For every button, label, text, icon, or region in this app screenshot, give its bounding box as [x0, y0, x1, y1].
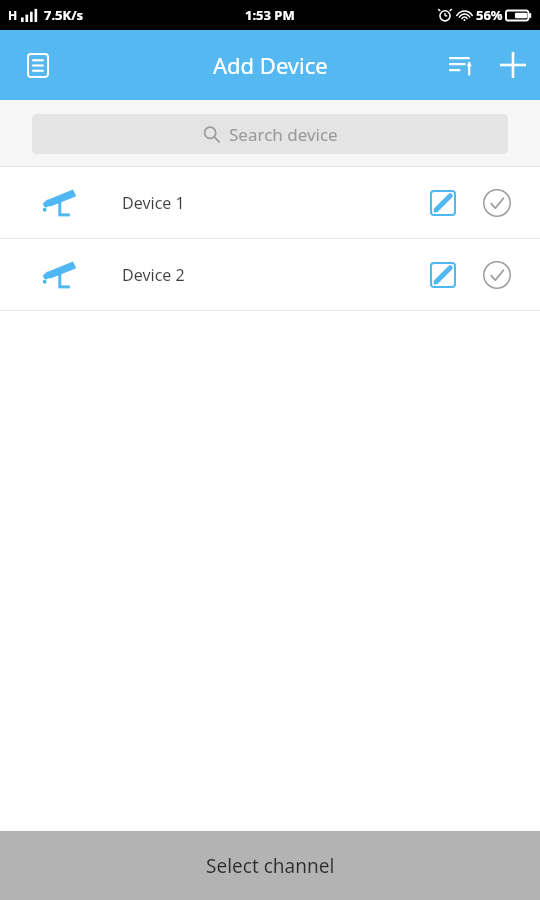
- button[interactable]: Select Device 2: [470, 248, 524, 302]
- staticText: Device 2: [122, 264, 416, 286]
- button[interactable]: Device 1: [0, 167, 540, 238]
- button[interactable]: Edit Device 1: [416, 176, 470, 230]
- button[interactable]: Device 2: [0, 239, 540, 310]
- staticText: 7.5K/s: [44, 6, 84, 24]
- button[interactable]: Menu: [16, 43, 60, 87]
- staticText: Search device: [229, 123, 338, 146]
- button[interactable]: Sort: [438, 41, 486, 89]
- staticText: 56%: [476, 6, 503, 24]
- staticText: 1:53 PM: [245, 6, 295, 24]
- staticText: Device 1: [122, 192, 416, 214]
- button[interactable]: Select Device 1: [470, 176, 524, 230]
- button[interactable]: Edit Device 2: [416, 248, 470, 302]
- button[interactable]: Add: [486, 38, 540, 92]
- button[interactable]: Search device: [32, 114, 508, 154]
- button[interactable]: Select channel: [0, 831, 540, 900]
- staticText: Add Device: [213, 50, 328, 80]
- staticText: Select channel: [206, 853, 335, 879]
- staticText: H: [8, 7, 18, 23]
